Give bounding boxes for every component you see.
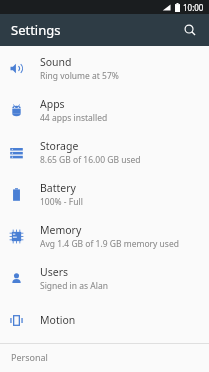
button[interactable]: Motion (0, 299, 209, 341)
staticText: Memory (40, 223, 82, 237)
staticText: Users (40, 265, 68, 279)
staticText: 44 apps installed (40, 112, 108, 124)
button[interactable]: Battery (0, 173, 209, 215)
staticText: Avg 1.4 GB of 1.9 GB memory used (40, 238, 179, 250)
button[interactable]: Users (0, 257, 209, 299)
staticText: 8.65 GB of 16.00 GB used (40, 154, 141, 166)
staticText: 100% - Full (40, 196, 83, 208)
button[interactable]: Search (179, 19, 201, 41)
staticText: Storage (40, 139, 79, 153)
staticText: Sound (40, 55, 72, 69)
staticText: Personal (11, 351, 48, 363)
button[interactable]: Memory (0, 215, 209, 257)
button[interactable]: Storage (0, 131, 209, 173)
staticText: Apps (40, 97, 65, 111)
staticText: Settings (11, 21, 61, 39)
staticText: 10:00 (183, 2, 204, 13)
staticText: Ring volume at 57% (40, 70, 119, 82)
staticText: Motion (40, 313, 76, 327)
staticText: Battery (40, 181, 76, 195)
button[interactable]: Sound (0, 47, 209, 89)
button[interactable]: Apps (0, 89, 209, 131)
staticText: Signed in as Alan (40, 280, 108, 292)
